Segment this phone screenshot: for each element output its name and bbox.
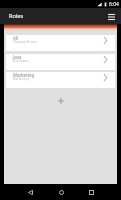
button[interactable]: Menu [106, 11, 117, 22]
staticText: Marketing t [13, 77, 30, 81]
staticText: All [13, 35, 19, 41]
button[interactable]: Back [22, 184, 38, 200]
staticText: Developers [13, 59, 29, 63]
staticText: Showing all roles [13, 40, 37, 44]
button[interactable]: Add [53, 93, 69, 109]
button[interactable]: All [6, 35, 115, 51]
button[interactable]: Marketing [6, 72, 115, 88]
staticText: 6:04 [109, 1, 119, 8]
staticText: Marketing [13, 72, 35, 78]
button[interactable]: Home [53, 184, 69, 200]
button[interactable]: Recents [83, 184, 99, 200]
button[interactable]: Java [6, 54, 115, 70]
staticText: Java [13, 54, 22, 60]
staticText: Roles [9, 12, 24, 20]
